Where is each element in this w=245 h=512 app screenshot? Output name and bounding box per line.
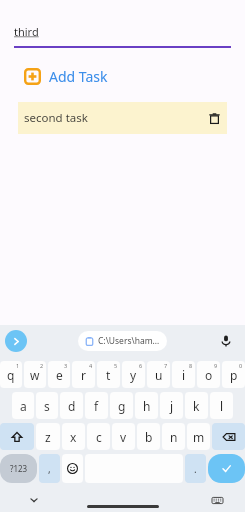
staticText: u: [155, 367, 163, 383]
staticText: n: [170, 429, 178, 445]
button[interactable]: d: [60, 392, 83, 419]
button[interactable]: k: [185, 392, 208, 419]
staticText: v: [120, 429, 127, 445]
button[interactable]: ?123: [0, 454, 37, 483]
button[interactable]: Backspace: [212, 423, 245, 450]
staticText: 6: [139, 362, 143, 369]
staticText: d: [68, 398, 76, 414]
staticText: p: [230, 367, 238, 383]
staticText: i: [182, 367, 186, 383]
staticText: third: [14, 24, 39, 39]
button[interactable]: j: [160, 392, 183, 419]
button[interactable]: r: [72, 361, 95, 388]
staticText: s: [44, 398, 50, 414]
staticText: a: [20, 398, 27, 414]
staticText: .: [194, 462, 197, 476]
button[interactable]: y: [122, 361, 145, 388]
button[interactable]: Voice input: [215, 330, 237, 352]
button[interactable]: Hide keyboard: [24, 490, 44, 510]
staticText: w: [30, 367, 40, 383]
button[interactable]: z: [36, 423, 60, 450]
button[interactable]: second task: [18, 102, 227, 134]
staticText: Add Task: [49, 67, 108, 86]
staticText: b: [145, 429, 153, 445]
button[interactable]: C:\Users\ham…: [78, 331, 167, 351]
staticText: 2: [40, 362, 44, 369]
staticText: 4: [89, 362, 93, 369]
staticText: l: [220, 398, 224, 414]
staticText: e: [56, 367, 63, 383]
staticText: g: [118, 398, 126, 414]
staticText: c: [96, 429, 102, 445]
button[interactable]: Switch keyboard: [207, 490, 227, 510]
button[interactable]: Delete task: [201, 105, 227, 131]
staticText: ,: [48, 462, 51, 476]
staticText: h: [143, 398, 151, 414]
button[interactable]: ,: [39, 454, 60, 483]
button[interactable]: Add Task: [24, 63, 108, 89]
staticText: x: [70, 429, 77, 445]
staticText: r: [81, 367, 86, 383]
button[interactable]: w: [24, 361, 46, 388]
button[interactable]: s: [36, 392, 58, 419]
button[interactable]: m: [187, 423, 210, 450]
button[interactable]: l: [210, 392, 233, 419]
staticText: 9: [214, 362, 218, 369]
button[interactable]: Expand suggestions: [5, 330, 27, 352]
staticText: f: [94, 398, 99, 414]
staticText: y: [130, 367, 137, 383]
button[interactable]: p: [222, 361, 245, 388]
staticText: 5: [114, 362, 118, 369]
button[interactable]: Emoji: [62, 454, 83, 483]
staticText: 8: [189, 362, 193, 369]
button[interactable]: .: [185, 454, 206, 483]
staticText: ?123: [10, 463, 28, 474]
button[interactable]: third: [0, 0, 245, 46]
staticText: second task: [24, 110, 201, 126]
staticText: k: [193, 398, 200, 414]
button[interactable]: h: [135, 392, 158, 419]
staticText: t: [106, 367, 111, 383]
button[interactable]: n: [162, 423, 185, 450]
button[interactable]: a: [12, 392, 34, 419]
button[interactable]: Enter: [208, 454, 245, 483]
staticText: q: [7, 367, 15, 383]
button[interactable]: u: [147, 361, 170, 388]
button[interactable]: Shift: [0, 423, 34, 450]
staticText: j: [170, 398, 174, 414]
button[interactable]: t: [97, 361, 120, 388]
staticText: o: [205, 367, 213, 383]
staticText: 3: [64, 362, 68, 369]
staticText: C:\Users\ham…: [98, 335, 160, 347]
button[interactable]: i: [172, 361, 195, 388]
button[interactable]: o: [197, 361, 220, 388]
staticText: 7: [164, 362, 168, 369]
button[interactable]: c: [87, 423, 110, 450]
button[interactable]: g: [110, 392, 133, 419]
button[interactable]: v: [112, 423, 135, 450]
staticText: 1: [16, 362, 20, 369]
staticText: m: [193, 429, 205, 445]
button[interactable]: e: [48, 361, 70, 388]
staticText: 0: [239, 362, 243, 369]
staticText: z: [45, 429, 51, 445]
button[interactable]: b: [137, 423, 160, 450]
button[interactable]: f: [85, 392, 108, 419]
button[interactable]: q: [0, 361, 22, 388]
button[interactable]: x: [62, 423, 85, 450]
